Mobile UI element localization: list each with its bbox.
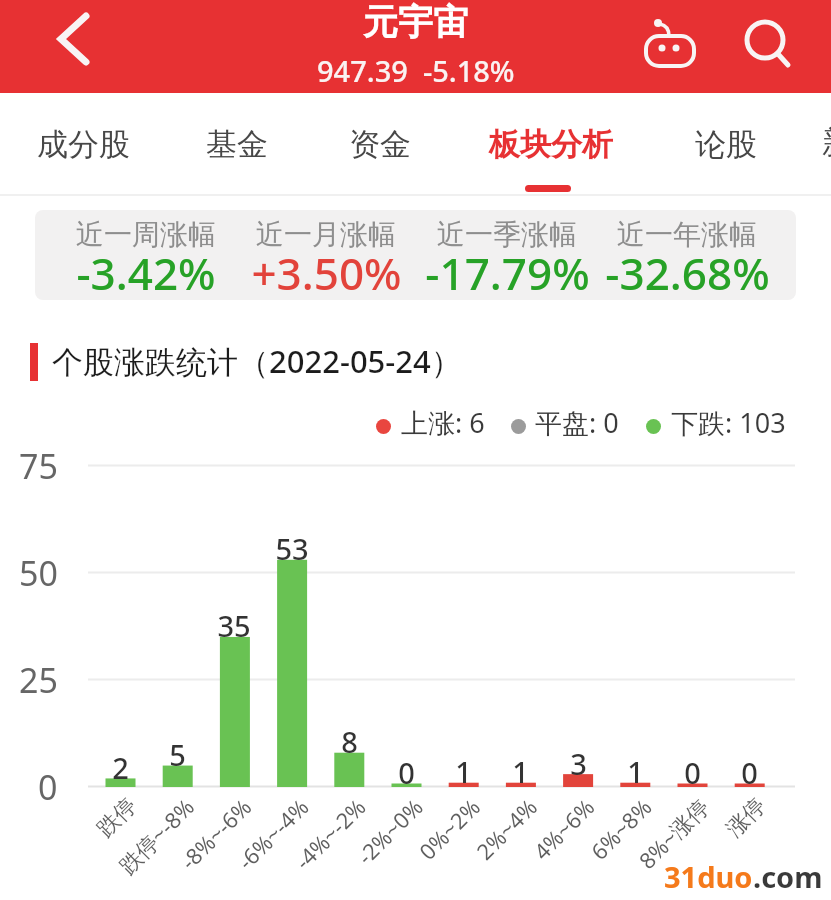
staticText: 53 (275, 529, 309, 568)
staticText: 基金 (206, 125, 268, 164)
staticText: 2 (112, 748, 129, 787)
staticText: 1 (455, 752, 472, 791)
button[interactable]: 板块分析 (473, 105, 629, 183)
staticText: 成分股 (37, 125, 130, 164)
staticText: 8 (341, 722, 358, 761)
staticText: 近一月涨幅 (256, 217, 396, 252)
button[interactable]: 成分股 (5, 105, 161, 183)
staticText: 资金 (349, 125, 411, 164)
staticText: 3 (570, 744, 587, 783)
staticText: 0 (684, 753, 701, 792)
staticText: -32.68% (605, 243, 770, 300)
staticText: 0 (741, 753, 758, 792)
button[interactable]: 资金 (302, 105, 458, 183)
staticText: 下跌: 103 (671, 404, 786, 441)
staticText: 31duo (664, 857, 753, 896)
staticText: 个股涨跌统计（2022-05-24） (52, 340, 462, 382)
staticText: 35 (217, 606, 251, 645)
staticText: 75 (19, 443, 58, 489)
staticText: -3.42% (76, 243, 216, 300)
staticText: 1 (627, 752, 644, 791)
button[interactable] (50, 8, 96, 70)
staticText: 近一季涨幅 (437, 217, 577, 252)
staticText: 论股 (695, 125, 757, 164)
staticText: 平盘: 0 (535, 404, 619, 441)
button[interactable]: 新闻 (822, 123, 831, 162)
staticText: 上涨: 6 (401, 404, 485, 441)
staticText: -17.79% (425, 243, 590, 300)
staticText: 25 (19, 657, 58, 703)
button[interactable]: 基金 (159, 105, 315, 183)
staticText: 元宇宙 (363, 0, 468, 44)
staticText: 5 (169, 735, 186, 774)
staticText: 板块分析 (489, 125, 613, 164)
staticText: 0 (38, 764, 58, 810)
button[interactable]: 论股 (648, 105, 804, 183)
staticText: 0 (398, 753, 415, 792)
staticText: 50 (19, 550, 58, 596)
staticText: 947.39 -5.18% (317, 51, 515, 90)
staticText: .com (753, 857, 823, 896)
staticText: +3.50% (251, 243, 402, 300)
staticText: 近一周涨幅 (76, 217, 216, 252)
staticText: 近一年涨幅 (617, 217, 757, 252)
button[interactable] (638, 12, 706, 80)
button[interactable] (736, 10, 796, 74)
staticText: 1 (512, 752, 529, 791)
